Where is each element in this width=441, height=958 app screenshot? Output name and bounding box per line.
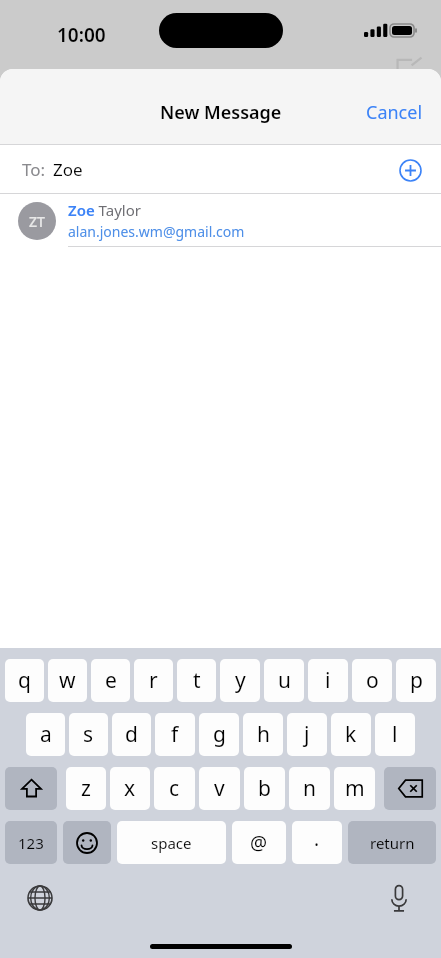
staticText: v — [214, 774, 225, 803]
button[interactable]: Dictate — [379, 878, 419, 918]
button[interactable]: p — [396, 659, 436, 702]
button[interactable]: space — [117, 821, 226, 864]
staticText: q — [18, 666, 31, 695]
staticText: ZT — [29, 212, 45, 231]
button[interactable]: Change keyboard language — [20, 878, 60, 918]
staticText: To: — [22, 158, 46, 181]
staticText: . — [314, 826, 320, 852]
button[interactable]: r — [134, 659, 173, 702]
button[interactable]: Add contact — [389, 149, 431, 191]
button[interactable]: n — [289, 767, 330, 810]
button[interactable]: @ — [232, 821, 286, 864]
staticText: alan.jones.wm@gmail.com — [68, 222, 245, 241]
button[interactable]: u — [264, 659, 304, 702]
staticText: c — [169, 774, 180, 803]
staticText: w — [59, 666, 76, 695]
staticText: space — [151, 833, 192, 853]
button[interactable]: q — [5, 659, 44, 702]
button[interactable]: return — [348, 821, 436, 864]
staticText: z — [81, 774, 91, 803]
staticText: t — [193, 666, 201, 695]
staticText: r — [149, 666, 158, 695]
staticText: o — [366, 666, 379, 695]
staticText: a — [40, 720, 52, 749]
button[interactable]: w — [48, 659, 87, 702]
button[interactable]: t — [177, 659, 216, 702]
staticText: m — [345, 774, 365, 803]
button[interactable]: Shift — [5, 767, 57, 810]
staticText: k — [345, 720, 357, 749]
button[interactable]: x — [110, 767, 150, 810]
button[interactable]: Emoji — [63, 821, 111, 864]
staticText: y — [235, 666, 246, 695]
staticText: @ — [250, 830, 268, 856]
button[interactable]: h — [243, 713, 283, 756]
button[interactable]: d — [112, 713, 151, 756]
staticText: s — [83, 720, 94, 749]
button[interactable]: g — [199, 713, 239, 756]
button[interactable]: k — [331, 713, 371, 756]
staticText: return — [370, 833, 415, 853]
staticText: h — [257, 720, 270, 749]
staticText: n — [303, 774, 316, 803]
staticText: b — [258, 774, 271, 803]
staticText: d — [125, 720, 138, 749]
button[interactable]: Cancel — [348, 92, 441, 133]
button[interactable]: m — [334, 767, 375, 810]
staticText: New Message — [160, 100, 282, 125]
button[interactable]: e — [91, 659, 130, 702]
button[interactable]: c — [154, 767, 195, 810]
button[interactable]: v — [199, 767, 240, 810]
button[interactable]: j — [287, 713, 327, 756]
button[interactable]: ZT — [0, 194, 441, 247]
staticText: f — [171, 720, 179, 749]
button[interactable]: s — [69, 713, 108, 756]
button[interactable]: . — [292, 821, 342, 864]
staticText: g — [213, 720, 226, 749]
button[interactable]: z — [66, 767, 106, 810]
button[interactable]: l — [375, 713, 415, 756]
button[interactable]: Backspace — [384, 767, 436, 810]
button[interactable]: y — [220, 659, 260, 702]
staticText: 10:00 — [57, 22, 106, 48]
button[interactable]: b — [244, 767, 285, 810]
button[interactable]: a — [26, 713, 65, 756]
button[interactable]: f — [155, 713, 195, 756]
staticText: 123 — [18, 833, 44, 853]
staticText: i — [325, 666, 331, 695]
staticText: l — [392, 720, 398, 749]
button[interactable]: 123 — [5, 821, 57, 864]
button[interactable]: o — [352, 659, 392, 702]
staticText: x — [124, 774, 136, 803]
staticText: e — [105, 666, 117, 695]
staticText: j — [304, 720, 310, 749]
button[interactable]: i — [308, 659, 348, 702]
staticText: Cancel — [366, 100, 423, 125]
staticText: Zoe — [53, 158, 83, 181]
staticText: u — [278, 666, 291, 695]
staticText: p — [410, 666, 423, 695]
staticText: Zoe Taylor — [68, 200, 141, 220]
